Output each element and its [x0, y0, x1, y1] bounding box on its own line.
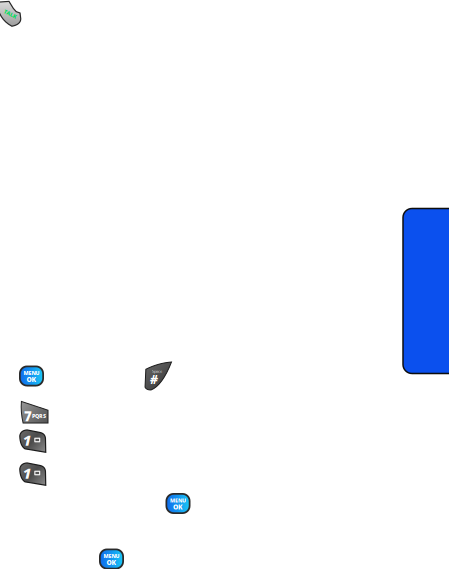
staticText: 7: [24, 407, 32, 425]
button[interactable]: Menu OK key: [19, 365, 44, 386]
staticText: Space: [152, 369, 162, 374]
staticText: 1: [23, 463, 32, 483]
staticText: MENU: [23, 369, 39, 376]
staticText: OK: [106, 558, 116, 567]
button[interactable]: Menu OK key: [99, 548, 124, 569]
staticText: MENU: [103, 552, 119, 559]
staticText: MENU: [170, 497, 186, 504]
staticText: OK: [173, 502, 183, 511]
staticText: 1: [23, 430, 32, 450]
staticText: #: [150, 371, 158, 387]
button[interactable]: Menu OK key: [165, 493, 190, 514]
staticText: OK: [26, 375, 36, 384]
staticText: TALK: [3, 10, 17, 18]
staticText: PQRS: [32, 412, 46, 420]
